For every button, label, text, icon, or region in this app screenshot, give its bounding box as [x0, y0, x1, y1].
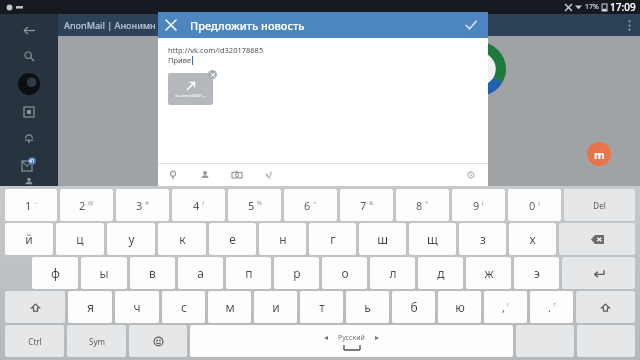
staticText: Предложить новость	[190, 18, 454, 33]
button[interactable]: в	[130, 257, 175, 289]
button[interactable]: ь	[346, 291, 389, 323]
button[interactable]: Close	[158, 12, 184, 38]
staticText: 3	[136, 198, 143, 213]
button[interactable]: ,	[484, 291, 527, 323]
button[interactable]: с	[162, 291, 205, 323]
staticText: (	[482, 199, 484, 207]
staticText: 17:09	[610, 0, 636, 14]
button[interactable]: ю	[438, 291, 481, 323]
button[interactable]: Location	[164, 166, 182, 184]
button[interactable]: 0	[508, 189, 561, 221]
staticText: е	[229, 231, 236, 247]
button[interactable]: е	[209, 223, 256, 255]
button[interactable]: 6	[284, 189, 337, 221]
button[interactable]: о	[322, 257, 367, 289]
button[interactable]: н	[259, 223, 306, 255]
button[interactable]: Settings	[462, 166, 480, 184]
button[interactable]: Shift	[5, 291, 65, 323]
button[interactable]: з	[459, 223, 506, 255]
button[interactable]: App	[587, 142, 611, 166]
button[interactable]: г	[309, 223, 356, 255]
button[interactable]: л	[370, 257, 415, 289]
staticText: ь	[364, 299, 371, 315]
staticText: л	[389, 265, 397, 281]
staticText: 1	[25, 198, 32, 213]
button[interactable]: 9	[452, 189, 505, 221]
staticText: 5	[248, 198, 255, 213]
button[interactable]: у	[107, 223, 155, 255]
button[interactable]: 1	[5, 189, 57, 221]
staticText: *	[425, 199, 429, 207]
button[interactable]: Shift	[576, 291, 635, 323]
button[interactable]: Saved	[16, 99, 42, 125]
button[interactable]: Search	[16, 43, 42, 69]
staticText: AnonMail | Анонимн	[64, 19, 156, 31]
button[interactable]: Back	[16, 17, 42, 43]
button[interactable]: Backspace	[559, 223, 635, 255]
button[interactable]: Camera	[228, 166, 246, 184]
button[interactable]: Messages	[16, 151, 42, 177]
button[interactable]: ч	[115, 291, 159, 323]
staticText: @	[88, 199, 94, 207]
button[interactable]: х	[509, 223, 556, 255]
button[interactable]: Space	[190, 325, 513, 357]
staticText: г	[330, 231, 336, 247]
button[interactable]: щ	[409, 223, 456, 255]
button[interactable]: Send	[454, 12, 488, 38]
button[interactable]: ш	[359, 223, 406, 255]
button[interactable]: 2	[60, 189, 113, 221]
button[interactable]: 5	[228, 189, 281, 221]
button[interactable]: Attach	[260, 166, 278, 184]
staticText: о	[341, 265, 349, 281]
button[interactable]: т	[300, 291, 343, 323]
button[interactable]: 4	[172, 189, 225, 221]
staticText: 9	[473, 198, 480, 213]
button[interactable]: я	[68, 291, 112, 323]
button[interactable]: ж	[466, 257, 511, 289]
staticText: Русский	[338, 333, 365, 343]
button[interactable]: р	[274, 257, 319, 289]
staticText: 41	[29, 158, 35, 165]
staticText: vk.com/id3201...	[175, 93, 206, 98]
button[interactable]: к	[158, 223, 206, 255]
button[interactable]: б	[392, 291, 435, 323]
button[interactable]: Notifications	[16, 125, 42, 151]
button[interactable]: 3	[116, 189, 169, 221]
button[interactable]: и	[254, 291, 297, 323]
button[interactable]: Remove attachment	[208, 70, 217, 79]
button[interactable]: Tag person	[196, 166, 214, 184]
button[interactable]: а	[178, 257, 223, 289]
button[interactable]: 7	[340, 189, 393, 221]
button[interactable]: м	[208, 291, 251, 323]
button[interactable]: й	[5, 223, 53, 255]
staticText: !	[507, 301, 509, 309]
button[interactable]: Profile	[14, 69, 44, 99]
staticText: ц	[76, 231, 84, 247]
button[interactable]: Friends	[16, 177, 42, 186]
button[interactable]: Enter	[562, 257, 635, 289]
button[interactable]: ф	[32, 257, 78, 289]
staticText: х	[529, 231, 536, 247]
button[interactable]: п	[226, 257, 271, 289]
button[interactable]: 8	[396, 189, 449, 221]
button[interactable]: ц	[56, 223, 104, 255]
staticText: Del	[593, 200, 606, 211]
button[interactable]: More options	[618, 14, 640, 36]
button[interactable]: vk.com/id3201...	[168, 73, 213, 105]
staticText: э	[534, 265, 540, 281]
staticText: m	[594, 147, 605, 162]
button[interactable]: э	[514, 257, 559, 289]
button[interactable]: ы	[81, 257, 127, 289]
button[interactable]: .	[530, 291, 573, 323]
button[interactable]: Emoji	[129, 325, 187, 357]
staticText: http://vk.com/id320178685	[168, 45, 264, 55]
staticText: 7	[360, 198, 367, 213]
button[interactable]: Sym	[67, 325, 126, 357]
button[interactable]: д	[418, 257, 463, 289]
button[interactable]: Del	[564, 189, 635, 221]
button[interactable]: Ctrl	[5, 325, 64, 357]
staticText: т	[319, 299, 325, 315]
staticText: ч	[133, 299, 141, 315]
